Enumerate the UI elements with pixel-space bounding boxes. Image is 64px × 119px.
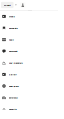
staticText: Code block <box>9 84 19 88</box>
staticText: Favorite <box>9 108 17 111</box>
button[interactable]: Code block <box>0 80 28 92</box>
button[interactable]: Comment <box>0 45 28 57</box>
staticText: Insert <box>4 3 11 7</box>
button[interactable]: Account <box>20 2 26 8</box>
staticText: Table <box>9 38 14 41</box>
button[interactable]: Media <box>0 11 28 22</box>
button[interactable]: Table <box>0 34 28 45</box>
staticText: Media <box>9 15 15 18</box>
button[interactable]: Your signature <box>0 57 28 69</box>
button[interactable]: Insert <box>1 2 13 8</box>
button[interactable]: Favorite <box>0 103 28 115</box>
button[interactable]: Template <box>0 22 28 34</box>
button[interactable]: Reference <box>0 92 28 103</box>
staticText: Gallery <box>9 73 17 76</box>
staticText: Your signature <box>9 61 23 64</box>
button[interactable]: Insert menu <box>13 2 20 8</box>
button[interactable]: Gallery <box>0 69 28 80</box>
staticText: Template <box>9 26 18 30</box>
staticText: Comment <box>9 50 18 53</box>
staticText: Reference <box>9 96 18 99</box>
